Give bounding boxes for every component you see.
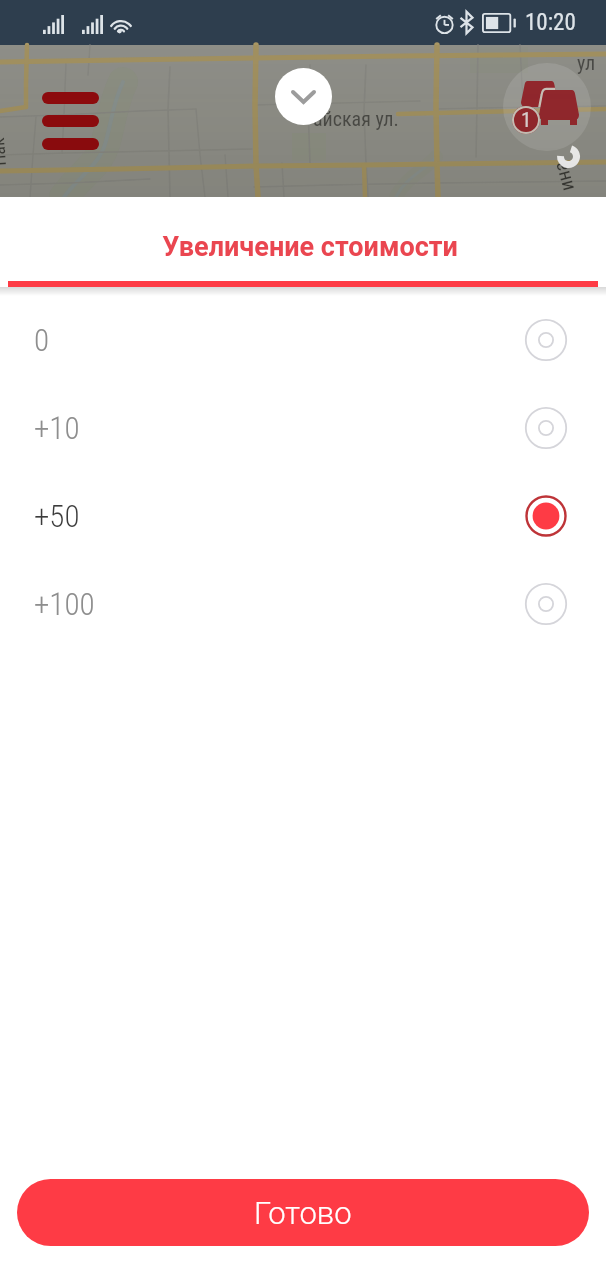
button[interactable]: Готово: [17, 1179, 589, 1246]
staticText: 0: [34, 322, 50, 358]
staticText: +10: [34, 410, 80, 446]
staticText: +50: [34, 498, 80, 534]
staticText: Нак: [0, 136, 10, 167]
staticText: ина: [548, 159, 578, 194]
button[interactable]: Nearby cars: [510, 70, 590, 140]
staticText: айская ул.: [313, 107, 399, 130]
staticText: 1: [521, 108, 532, 133]
button[interactable]: +100: [0, 560, 606, 648]
staticText: Готово: [254, 1195, 352, 1231]
button[interactable]: +50: [0, 472, 606, 560]
button[interactable]: Open menu: [42, 92, 99, 150]
staticText: ул: [577, 51, 596, 74]
button[interactable]: 0: [0, 296, 606, 384]
staticText: 10:20: [525, 9, 576, 36]
staticText: Увеличение стоимости: [162, 231, 458, 263]
button[interactable]: Collapse panel: [275, 68, 332, 125]
button[interactable]: +10: [0, 384, 606, 472]
staticText: +100: [34, 586, 95, 622]
